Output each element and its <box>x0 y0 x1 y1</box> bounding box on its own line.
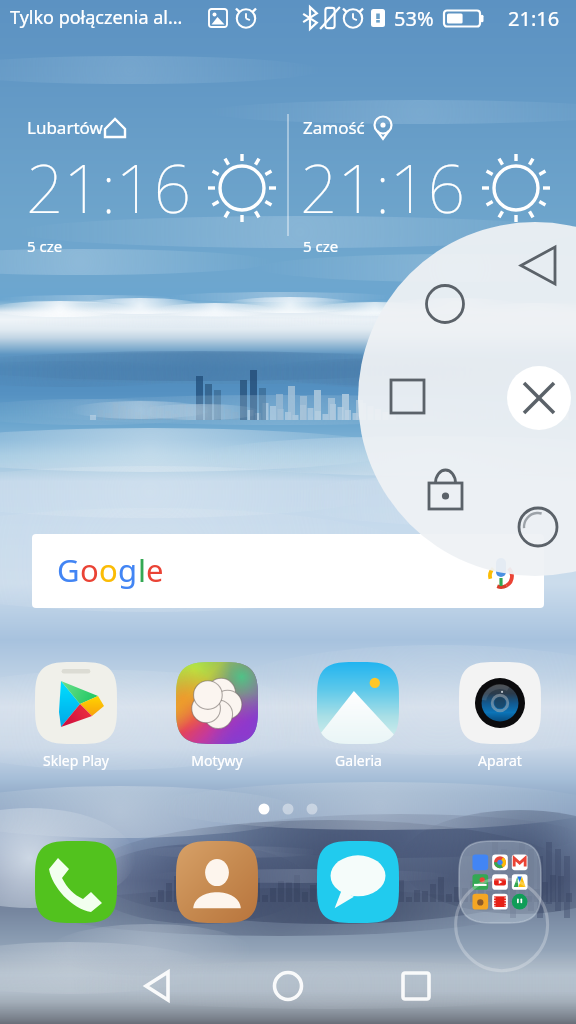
button[interactable]: Sklep Play <box>21 662 131 770</box>
staticText: Aparat <box>478 751 522 770</box>
button[interactable] <box>20 108 280 258</box>
staticText: 5 cze <box>27 236 63 256</box>
staticText: G <box>57 549 80 591</box>
button[interactable]: Google folder <box>459 841 541 923</box>
button[interactable]: Contacts <box>176 841 258 923</box>
staticText: o <box>80 549 99 591</box>
button[interactable]: Back <box>133 960 185 1012</box>
staticText: 53% <box>394 5 434 32</box>
button[interactable]: Galeria <box>303 662 413 770</box>
staticText: Motywy <box>191 751 243 770</box>
staticText: e <box>146 549 164 591</box>
staticText: g <box>118 549 138 591</box>
button[interactable]: Motywy <box>162 662 272 770</box>
button[interactable]: Phone <box>35 841 117 923</box>
button[interactable]: Aparat <box>445 662 555 770</box>
button[interactable]: Recents <box>390 960 442 1012</box>
staticText: 5 cze <box>303 236 339 256</box>
staticText: Zamość <box>303 116 365 139</box>
staticText: Tylko połączenia al... <box>10 5 183 30</box>
staticText: Sklep Play <box>43 751 109 770</box>
button[interactable]: Close menu <box>507 366 571 430</box>
staticText: 21:16 <box>508 5 560 32</box>
button[interactable]: Home <box>262 960 314 1012</box>
staticText: 21:16 <box>26 142 191 232</box>
staticText: o <box>99 549 118 591</box>
staticText: Galeria <box>335 751 382 770</box>
staticText: Lubartów <box>27 116 103 139</box>
button[interactable]: Messages <box>317 841 399 923</box>
staticText: 21:16 <box>300 142 465 232</box>
button[interactable]: G <box>32 534 544 608</box>
staticText: l <box>138 549 146 591</box>
